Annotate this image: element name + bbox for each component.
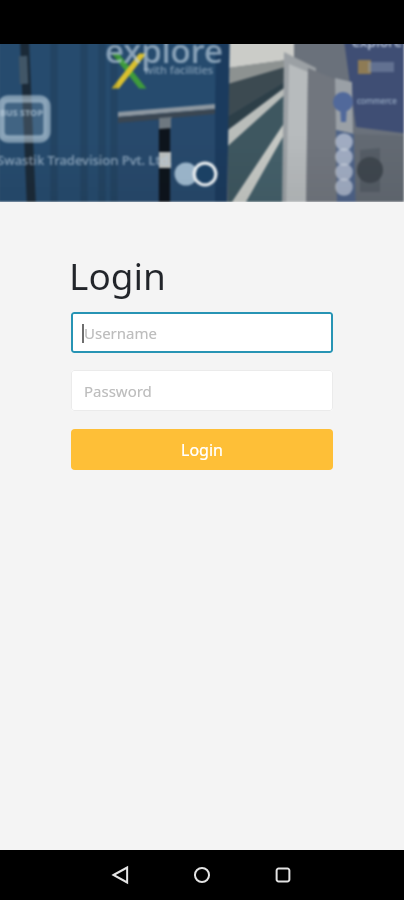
staticText: Username [84, 323, 157, 343]
button[interactable]: Back [80, 850, 161, 900]
staticText: Login [69, 250, 166, 300]
staticText: Swastik Tradevision Pvt. Ltd. [0, 151, 172, 169]
button[interactable]: Password [71, 370, 333, 411]
staticText: BUS STOP [0, 106, 43, 118]
staticText: commerce [357, 95, 397, 106]
staticText: Password [84, 381, 152, 401]
button[interactable]: Username [71, 312, 333, 353]
button[interactable]: Home [161, 850, 242, 900]
staticText: Login [181, 439, 223, 461]
button[interactable]: Recent apps [242, 850, 323, 900]
staticText: with facilities [144, 62, 214, 77]
staticText: explore [352, 44, 403, 51]
button[interactable]: Login [71, 429, 333, 470]
staticText: explore [105, 44, 223, 73]
